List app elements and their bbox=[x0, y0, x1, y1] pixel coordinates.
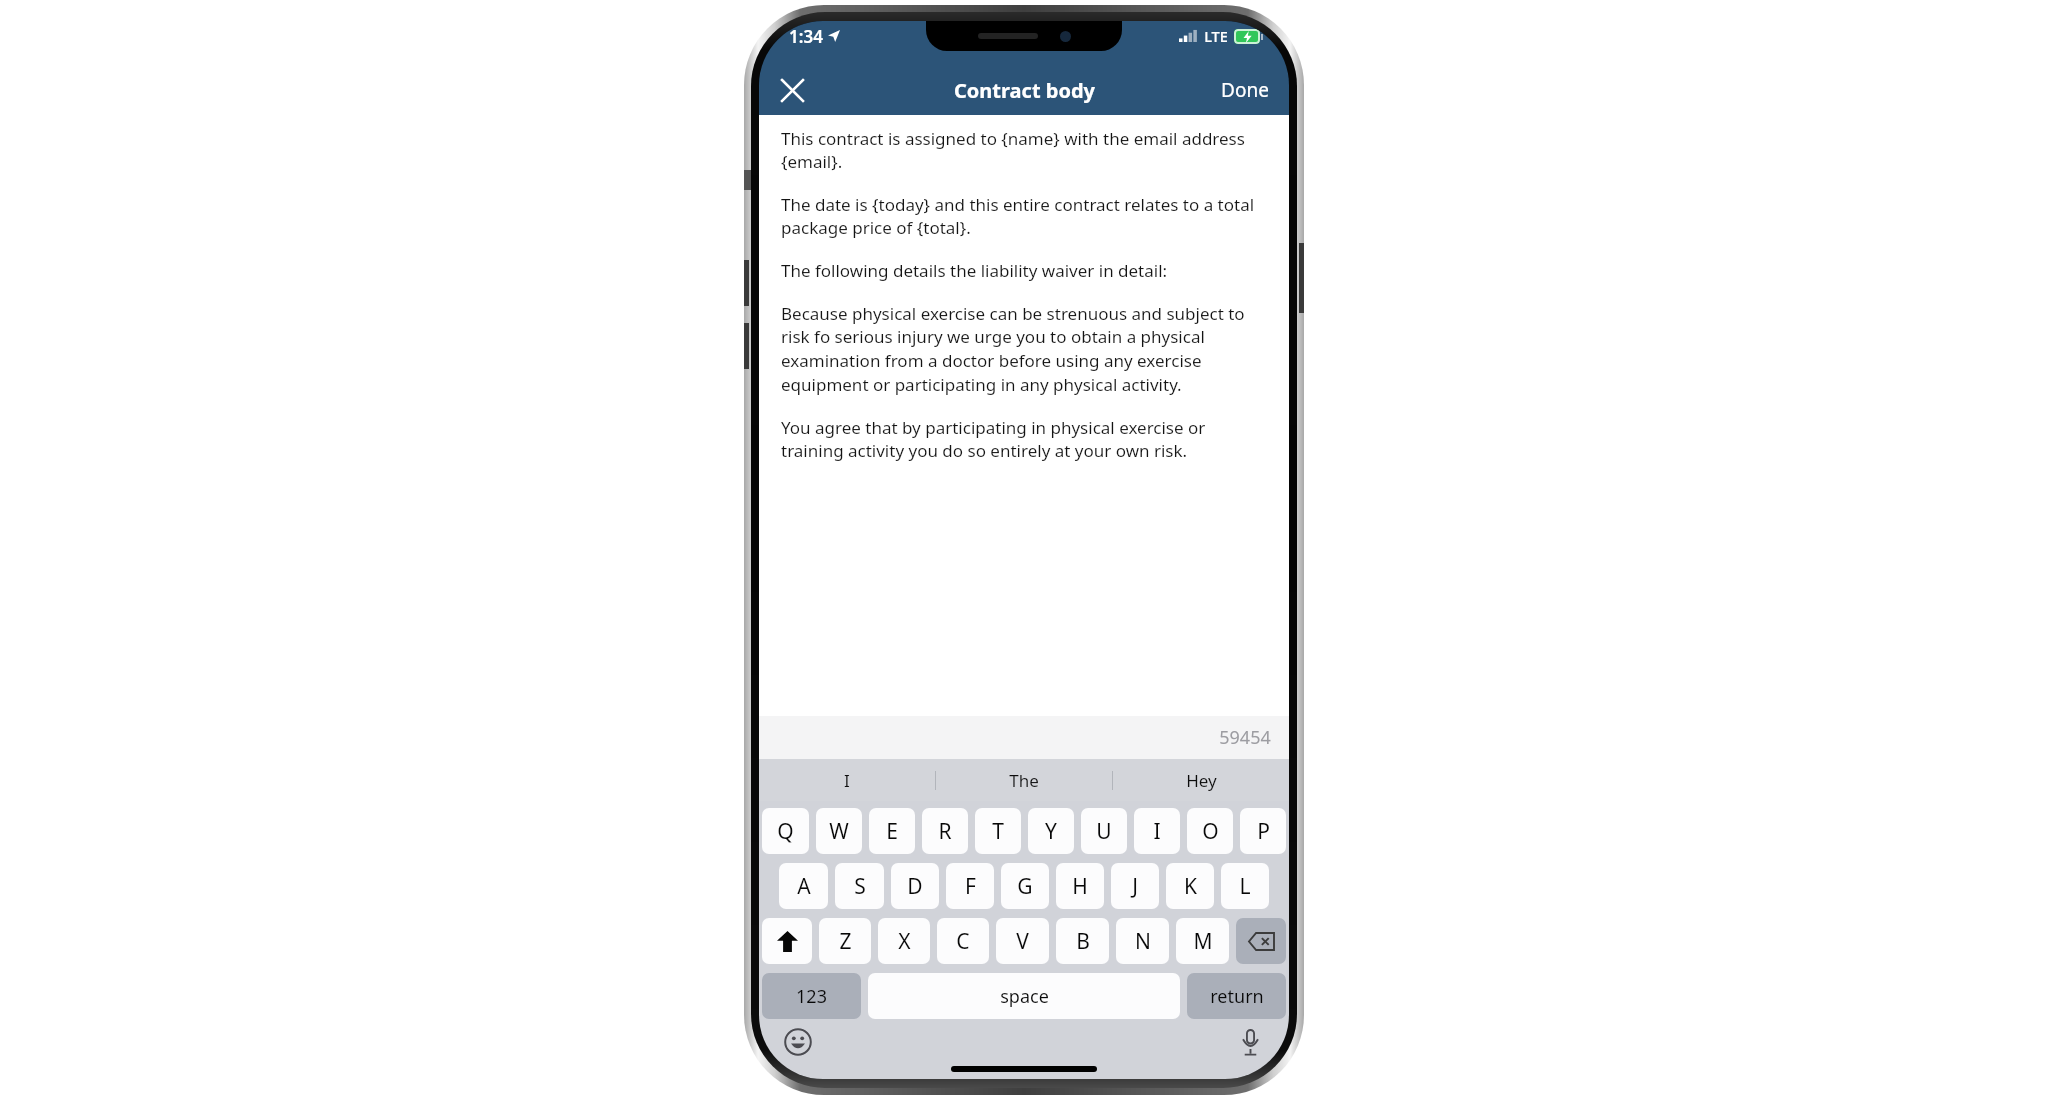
button[interactable]: Close bbox=[769, 67, 815, 113]
staticText: N bbox=[1135, 927, 1151, 956]
staticText: Done bbox=[1221, 77, 1269, 103]
button[interactable]: Y bbox=[1028, 808, 1074, 854]
staticText: LTE bbox=[1204, 26, 1228, 46]
staticText: F bbox=[965, 872, 976, 901]
button[interactable]: return bbox=[1187, 973, 1286, 1019]
staticText: K bbox=[1184, 872, 1197, 901]
staticText: O bbox=[1202, 817, 1219, 846]
button[interactable]: J bbox=[1111, 863, 1159, 909]
button[interactable]: I bbox=[1134, 808, 1180, 854]
staticText: I bbox=[1153, 817, 1161, 846]
button[interactable]: D bbox=[891, 863, 939, 909]
staticText: Y bbox=[1045, 817, 1057, 846]
button[interactable]: R bbox=[922, 808, 968, 854]
staticText: This contract is assigned to {name} with… bbox=[781, 127, 1269, 173]
staticText: I bbox=[844, 769, 850, 792]
button[interactable]: O bbox=[1187, 808, 1233, 854]
button[interactable]: The bbox=[936, 759, 1112, 801]
button[interactable]: Hey bbox=[1113, 759, 1289, 801]
button[interactable]: U bbox=[1081, 808, 1127, 854]
staticText: M bbox=[1193, 927, 1213, 956]
staticText: 123 bbox=[796, 984, 827, 1009]
staticText: V bbox=[1016, 927, 1029, 956]
button[interactable]: Backspace bbox=[1236, 918, 1286, 964]
staticText: 1:34 bbox=[789, 25, 823, 48]
button[interactable]: W bbox=[816, 808, 862, 854]
button[interactable]: P bbox=[1240, 808, 1286, 854]
button[interactable]: 123 bbox=[762, 973, 861, 1019]
staticText: J bbox=[1132, 872, 1138, 901]
staticText: T bbox=[992, 817, 1004, 846]
staticText: R bbox=[938, 817, 952, 846]
button[interactable]: Q bbox=[762, 808, 809, 854]
staticText: Q bbox=[777, 817, 794, 846]
staticText: You agree that by participating in physi… bbox=[781, 416, 1269, 462]
staticText: Z bbox=[839, 927, 852, 956]
button[interactable]: E bbox=[869, 808, 915, 854]
button[interactable]: G bbox=[1001, 863, 1049, 909]
button[interactable]: C bbox=[937, 918, 989, 964]
staticText: E bbox=[886, 817, 898, 846]
staticText: Because physical exercise can be strenuo… bbox=[781, 302, 1269, 396]
staticText: P bbox=[1257, 817, 1270, 846]
staticText: S bbox=[854, 872, 866, 901]
button[interactable]: K bbox=[1166, 863, 1214, 909]
staticText: W bbox=[829, 817, 849, 846]
button[interactable]: Shift bbox=[762, 918, 812, 964]
staticText: U bbox=[1096, 817, 1112, 846]
button[interactable]: T bbox=[975, 808, 1021, 854]
staticText: A bbox=[797, 872, 811, 901]
staticText: C bbox=[956, 927, 970, 956]
staticText: X bbox=[898, 927, 911, 956]
staticText: G bbox=[1017, 872, 1033, 901]
staticText: space bbox=[1000, 984, 1049, 1009]
button[interactable]: Z bbox=[819, 918, 871, 964]
button[interactable]: H bbox=[1056, 863, 1104, 909]
button[interactable]: X bbox=[878, 918, 930, 964]
button[interactable]: V bbox=[996, 918, 1049, 964]
staticText: Contract body bbox=[954, 77, 1095, 104]
button[interactable]: space bbox=[868, 973, 1180, 1019]
button[interactable]: N bbox=[1116, 918, 1169, 964]
staticText: return bbox=[1210, 984, 1264, 1009]
staticText: L bbox=[1239, 872, 1251, 901]
button[interactable]: M bbox=[1176, 918, 1229, 964]
staticText: The following details the liability waiv… bbox=[781, 259, 1168, 282]
button[interactable]: Done bbox=[1201, 65, 1289, 115]
button[interactable]: Emoji bbox=[779, 1023, 817, 1061]
staticText: H bbox=[1072, 872, 1088, 901]
staticText: Hey bbox=[1186, 769, 1217, 792]
button[interactable]: I bbox=[759, 759, 935, 801]
button[interactable]: F bbox=[946, 863, 994, 909]
staticText: B bbox=[1076, 927, 1090, 956]
staticText: The date is {today} and this entire cont… bbox=[781, 193, 1269, 239]
staticText: The bbox=[1009, 769, 1039, 792]
staticText: D bbox=[907, 872, 923, 901]
staticText: 59454 bbox=[1219, 725, 1271, 750]
button[interactable]: B bbox=[1056, 918, 1109, 964]
button[interactable]: L bbox=[1221, 863, 1269, 909]
button[interactable]: A bbox=[779, 863, 828, 909]
button[interactable]: S bbox=[835, 863, 884, 909]
button[interactable]: Dictation bbox=[1231, 1023, 1269, 1061]
